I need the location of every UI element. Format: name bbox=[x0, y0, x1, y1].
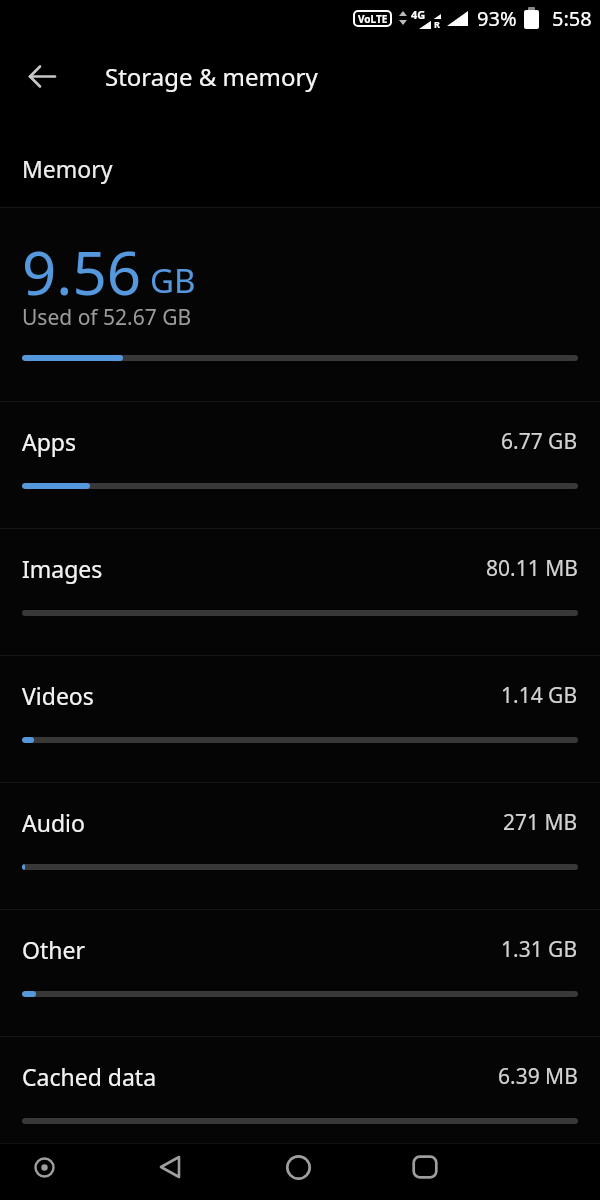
staticText: 9.56 bbox=[22, 231, 142, 313]
staticText: Images bbox=[22, 553, 103, 584]
button[interactable]: Cached data bbox=[0, 1036, 600, 1143]
staticText: Storage & memory bbox=[105, 60, 318, 93]
staticText: Cached data bbox=[22, 1061, 157, 1092]
staticText: GB bbox=[150, 258, 196, 303]
button[interactable]: Images bbox=[0, 528, 600, 655]
button[interactable] bbox=[278, 1147, 318, 1187]
staticText: 6.77 GB bbox=[501, 427, 578, 456]
button[interactable]: Audio bbox=[0, 782, 600, 909]
staticText: 5:58 bbox=[552, 5, 592, 32]
staticText: 4G bbox=[411, 7, 426, 22]
button[interactable]: Other bbox=[0, 909, 600, 1036]
staticText: 93% bbox=[477, 5, 517, 32]
staticText: Apps bbox=[22, 426, 77, 457]
staticText: Used of 52.67 GB bbox=[22, 303, 192, 332]
staticText: VoLTE bbox=[358, 12, 388, 26]
button[interactable]: 9.56 bbox=[0, 207, 600, 401]
staticText: 80.11 MB bbox=[486, 554, 578, 583]
staticText: R bbox=[434, 18, 440, 30]
button[interactable] bbox=[24, 1147, 64, 1187]
staticText: 271 MB bbox=[503, 808, 578, 837]
staticText: Audio bbox=[22, 807, 85, 838]
button[interactable] bbox=[405, 1147, 445, 1187]
staticText: Videos bbox=[22, 680, 94, 711]
staticText: 6.39 MB bbox=[498, 1062, 578, 1091]
staticText: Other bbox=[22, 934, 85, 965]
button[interactable]: Videos bbox=[0, 655, 600, 782]
button[interactable] bbox=[150, 1147, 190, 1187]
staticText: 1.31 GB bbox=[501, 935, 578, 964]
button[interactable]: Apps bbox=[0, 401, 600, 528]
staticText: 1.14 GB bbox=[501, 681, 578, 710]
button[interactable] bbox=[22, 56, 62, 96]
staticText: Memory bbox=[22, 153, 113, 184]
